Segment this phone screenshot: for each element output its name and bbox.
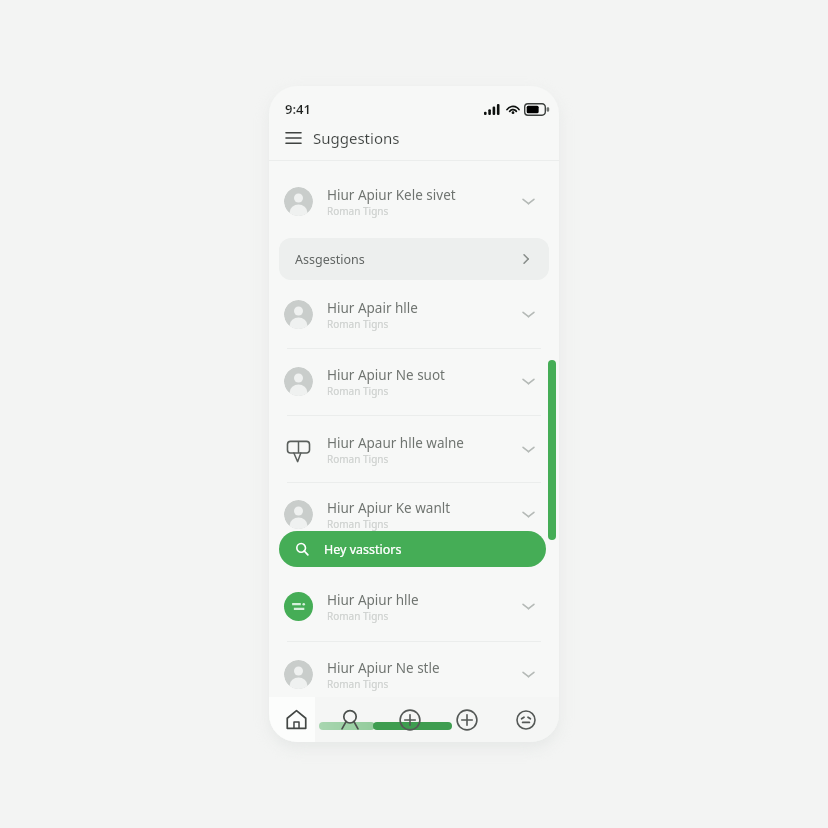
button[interactable]: Hiur Apair hlle bbox=[269, 291, 559, 337]
button[interactable]: Hiur Apaur hlle walne bbox=[269, 426, 559, 472]
button[interactable]: Hey vasstiors bbox=[279, 531, 546, 567]
button[interactable]: Add bbox=[389, 697, 431, 742]
staticText: Hiur Apiur hlle bbox=[327, 591, 419, 609]
staticText: Roman Tigns bbox=[327, 452, 389, 466]
button[interactable]: Search people bbox=[329, 697, 371, 742]
staticText: Roman Tigns bbox=[327, 677, 389, 691]
button[interactable]: Account bbox=[505, 697, 547, 742]
button[interactable]: Hiur Apiur Ke wanlt bbox=[269, 491, 559, 537]
staticText: Roman Tigns bbox=[327, 517, 389, 531]
staticText: Roman Tigns bbox=[327, 204, 389, 218]
staticText: Assgestions bbox=[295, 251, 365, 268]
button[interactable]: Home bbox=[275, 697, 317, 742]
button[interactable]: Assgestions bbox=[279, 238, 549, 280]
staticText: Hiur Apaur hlle walne bbox=[327, 434, 464, 452]
staticText: Hiur Apair hlle bbox=[327, 299, 418, 317]
button[interactable]: Hiur Apiur hlle bbox=[269, 583, 559, 629]
button[interactable]: Hiur Apiur Ne stle bbox=[269, 651, 559, 697]
staticText: 9:41 bbox=[285, 100, 311, 118]
staticText: Hiur Apiur Kele sivet bbox=[327, 186, 456, 204]
button[interactable]: Hiur Apiur Ne suot bbox=[269, 358, 559, 404]
button[interactable]: Create bbox=[446, 697, 488, 742]
button[interactable]: Hiur Apiur Kele sivet bbox=[269, 178, 559, 224]
button[interactable]: Menu bbox=[280, 125, 306, 151]
staticText: Roman Tigns bbox=[327, 609, 389, 623]
staticText: Suggestions bbox=[313, 128, 400, 148]
staticText: Hey vasstiors bbox=[324, 541, 402, 558]
staticText: Hiur Apiur Ne suot bbox=[327, 366, 445, 384]
staticText: Hiur Apiur Ke wanlt bbox=[327, 499, 451, 517]
staticText: Hiur Apiur Ne stle bbox=[327, 659, 440, 677]
staticText: Roman Tigns bbox=[327, 384, 389, 398]
staticText: Roman Tigns bbox=[327, 317, 389, 331]
